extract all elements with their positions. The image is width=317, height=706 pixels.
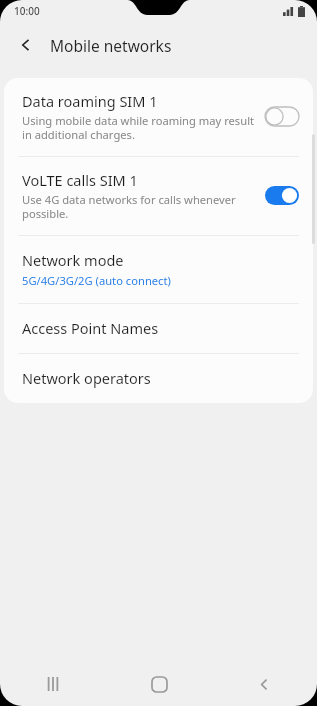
staticText: 10:00 xyxy=(14,4,40,18)
staticText: Use 4G data networks for calls whenever … xyxy=(22,192,255,221)
button[interactable]: Network mode xyxy=(4,236,313,303)
button[interactable]: Data roaming SIM 1 xyxy=(4,78,313,156)
button[interactable]: Recent apps xyxy=(26,662,80,706)
button[interactable]: Toggle on xyxy=(265,186,299,205)
staticText: Access Point Names xyxy=(22,318,159,338)
staticText: VoLTE calls SIM 1 xyxy=(22,170,138,190)
staticText: Data roaming SIM 1 xyxy=(22,91,158,111)
staticText: Using mobile data while roaming may resu… xyxy=(22,113,255,142)
staticText: Network operators xyxy=(22,368,151,388)
button[interactable]: Access Point Names xyxy=(4,304,313,353)
staticText: Network mode xyxy=(22,250,124,270)
button[interactable]: Home xyxy=(132,662,186,706)
staticText: Mobile networks xyxy=(50,35,172,56)
staticText: 5G/4G/3G/2G (auto connect) xyxy=(22,273,171,288)
button[interactable]: Toggle off xyxy=(265,107,299,126)
button[interactable]: Back xyxy=(237,662,291,706)
button[interactable]: VoLTE calls SIM 1 xyxy=(4,157,313,235)
button[interactable]: Back xyxy=(8,27,44,63)
button[interactable]: Network operators xyxy=(4,354,313,403)
